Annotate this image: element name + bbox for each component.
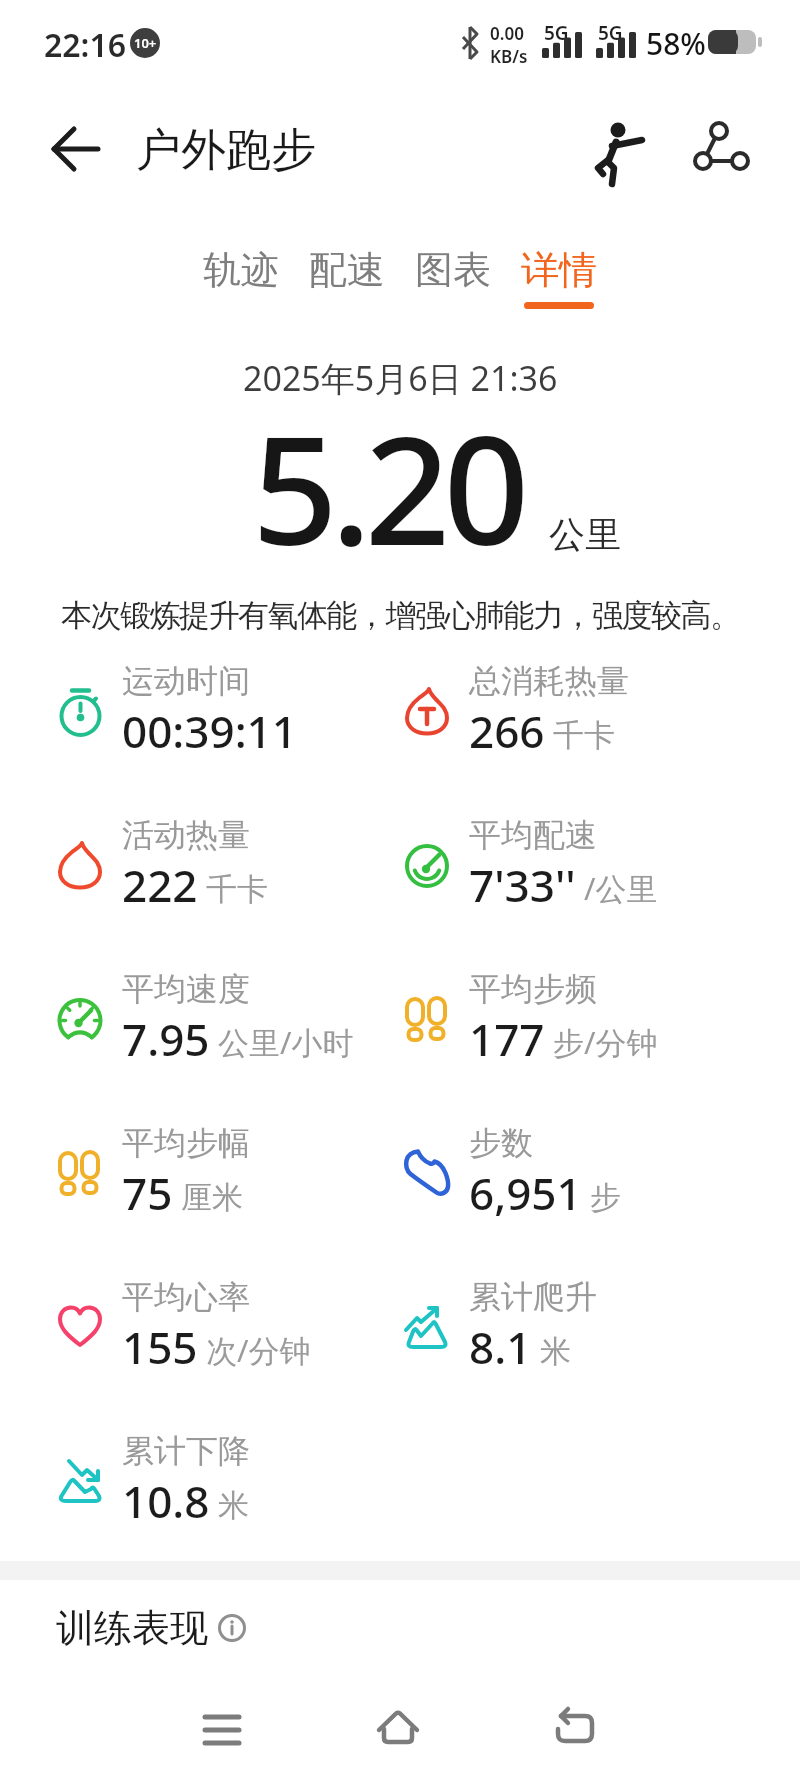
button[interactable]: 累计爬升	[404, 1272, 597, 1382]
button[interactable]: 轨迹	[203, 246, 279, 294]
staticText: 配速	[309, 246, 385, 294]
staticText: 千卡	[553, 716, 615, 755]
staticText: 训练表现	[56, 1604, 208, 1652]
staticText: 平均速度	[122, 969, 250, 1009]
staticText: 轨迹	[203, 246, 279, 294]
button[interactable]: 配速	[309, 246, 385, 294]
staticText: 运动时间	[122, 661, 250, 701]
staticText: 千卡	[206, 870, 268, 909]
staticText: 步数	[469, 1123, 533, 1163]
button[interactable]: 累计下降	[57, 1426, 250, 1536]
staticText: 5.20	[252, 385, 523, 589]
button[interactable]: 平均配速	[404, 810, 658, 920]
staticText: 6,951	[469, 1163, 582, 1223]
staticText: 7.95	[122, 1009, 210, 1069]
button[interactable]: 图表	[415, 246, 491, 294]
staticText: 266	[469, 701, 545, 761]
staticText: 7'33''	[469, 855, 576, 915]
button[interactable]	[590, 116, 646, 186]
button[interactable]: 活动热量	[57, 810, 268, 920]
staticText: 累计下降	[122, 1431, 250, 1471]
staticText: 公里	[549, 512, 621, 557]
button[interactable]: 平均步幅	[57, 1118, 250, 1228]
staticText: 户外跑步	[136, 122, 316, 179]
button[interactable]: 平均速度	[57, 964, 354, 1074]
staticText: 步/分钟	[553, 1021, 658, 1063]
staticText: 75	[122, 1163, 173, 1223]
staticText: 平均配速	[469, 815, 597, 855]
button[interactable]	[200, 1709, 244, 1753]
staticText: 22:16	[44, 23, 127, 67]
staticText: 2025年5月6日 21:36	[243, 355, 558, 401]
staticText: 平均心率	[122, 1277, 250, 1317]
staticText: 步	[590, 1178, 621, 1217]
button[interactable]	[44, 120, 102, 178]
button[interactable]	[692, 120, 748, 176]
staticText: /公里	[584, 867, 658, 909]
staticText: 222	[122, 855, 198, 915]
staticText: 详情	[521, 246, 597, 294]
staticText: 活动热量	[122, 815, 250, 855]
staticText: 10.8	[122, 1471, 210, 1531]
button[interactable]	[555, 1707, 599, 1751]
button[interactable]	[376, 1707, 420, 1751]
staticText: 次/分钟	[206, 1329, 311, 1371]
button[interactable]: 总消耗热量	[404, 656, 629, 766]
staticText: 图表	[415, 246, 491, 294]
button[interactable]: 步数	[404, 1118, 621, 1228]
staticText: 8.1	[469, 1317, 532, 1377]
staticText: 00:39:11	[122, 701, 297, 761]
staticText: 本次锻炼提升有氧体能，增强心肺能力，强度较高。	[61, 596, 740, 635]
staticText: 厘米	[181, 1178, 243, 1217]
staticText: 5G	[598, 20, 623, 46]
staticText: 5G	[544, 20, 569, 46]
button[interactable]: 平均心率	[57, 1272, 311, 1382]
staticText: 平均步频	[469, 969, 597, 1009]
staticText: KB/s	[490, 45, 528, 68]
staticText: 155	[122, 1317, 198, 1377]
staticText: 总消耗热量	[469, 661, 629, 701]
button[interactable]: 平均步频	[404, 964, 658, 1074]
button[interactable]: 详情	[521, 246, 597, 309]
button[interactable]: 训练表现	[56, 1604, 246, 1652]
staticText: 10+	[134, 34, 157, 52]
staticText: 米	[540, 1332, 571, 1371]
staticText: 58%	[646, 23, 706, 64]
staticText: 177	[469, 1009, 545, 1069]
staticText: 公里/小时	[218, 1021, 354, 1063]
staticText: 平均步幅	[122, 1123, 250, 1163]
staticText: 0.00	[490, 22, 524, 45]
staticText: 累计爬升	[469, 1277, 597, 1317]
staticText: 米	[218, 1486, 249, 1525]
button[interactable]: 运动时间	[57, 656, 297, 766]
